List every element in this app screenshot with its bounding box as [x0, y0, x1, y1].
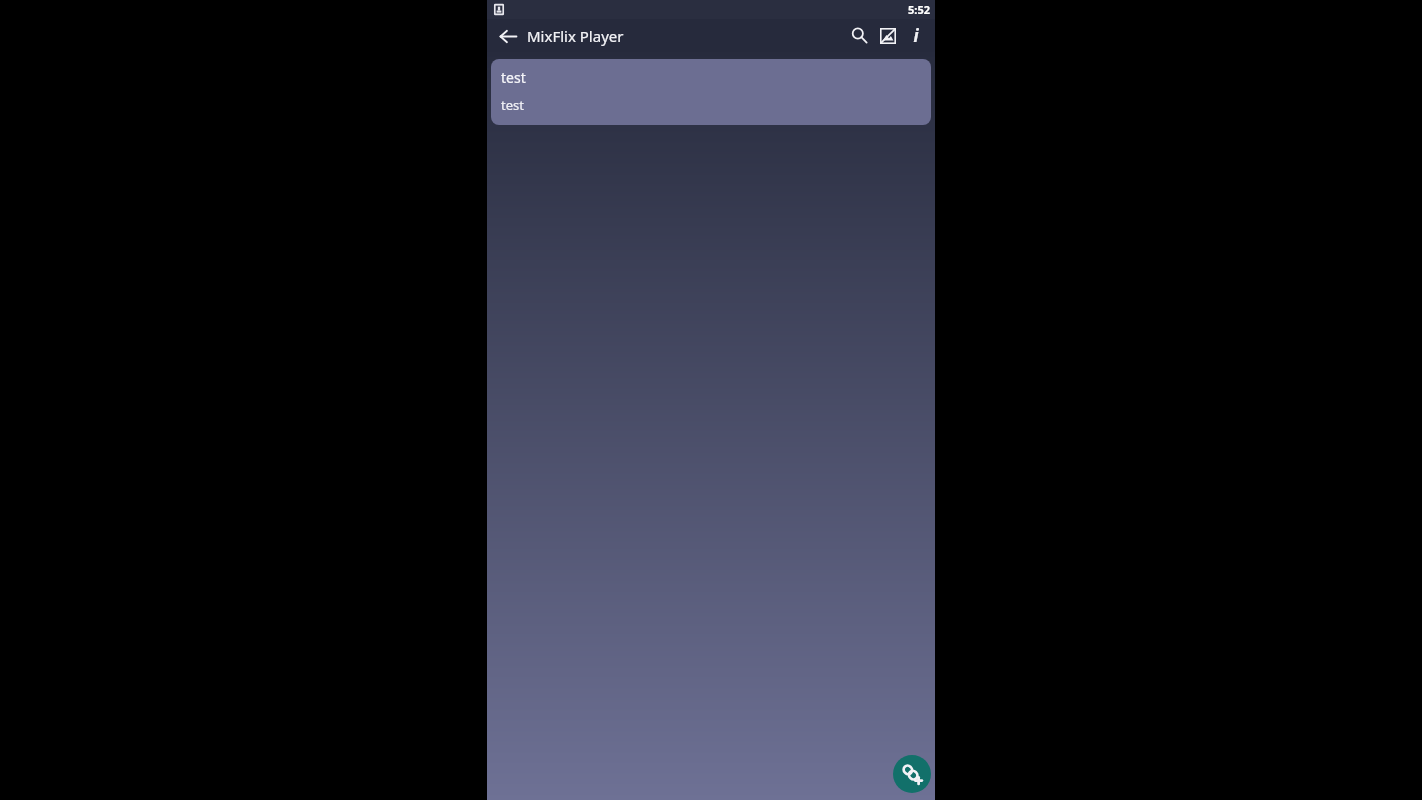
staticText: MixFlix Player [527, 26, 624, 46]
button[interactable]: Add link [893, 755, 931, 793]
staticText: test [501, 68, 526, 87]
button[interactable]: Hide images [874, 22, 901, 49]
button[interactable]: test [491, 59, 931, 125]
button[interactable]: Info [902, 22, 929, 49]
staticText: i [913, 24, 919, 47]
button[interactable]: Back [495, 23, 521, 49]
button[interactable]: Search [846, 22, 873, 49]
staticText: test [501, 96, 524, 114]
staticText: 5:52 [908, 2, 930, 17]
